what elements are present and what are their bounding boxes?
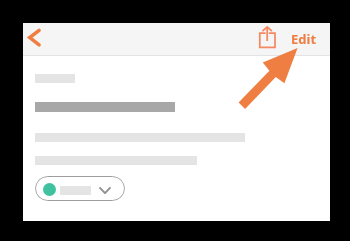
staticText: Edit <box>291 30 317 48</box>
button[interactable]: Back <box>23 23 55 55</box>
button[interactable]: Edit <box>288 23 320 55</box>
button[interactable]: Share <box>254 23 282 55</box>
button[interactable] <box>35 176 125 201</box>
